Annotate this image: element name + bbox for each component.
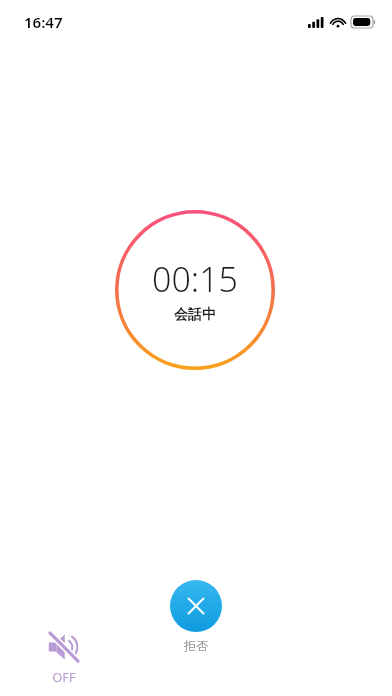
staticText: 拒否: [184, 638, 208, 653]
staticText: 会話中: [174, 306, 216, 324]
button[interactable]: 拒否: [162, 580, 230, 653]
staticText: 00:15: [152, 256, 238, 302]
button[interactable]: Speaker off: [30, 628, 98, 686]
staticText: 16:47: [24, 12, 63, 32]
staticText: OFF: [52, 668, 76, 686]
